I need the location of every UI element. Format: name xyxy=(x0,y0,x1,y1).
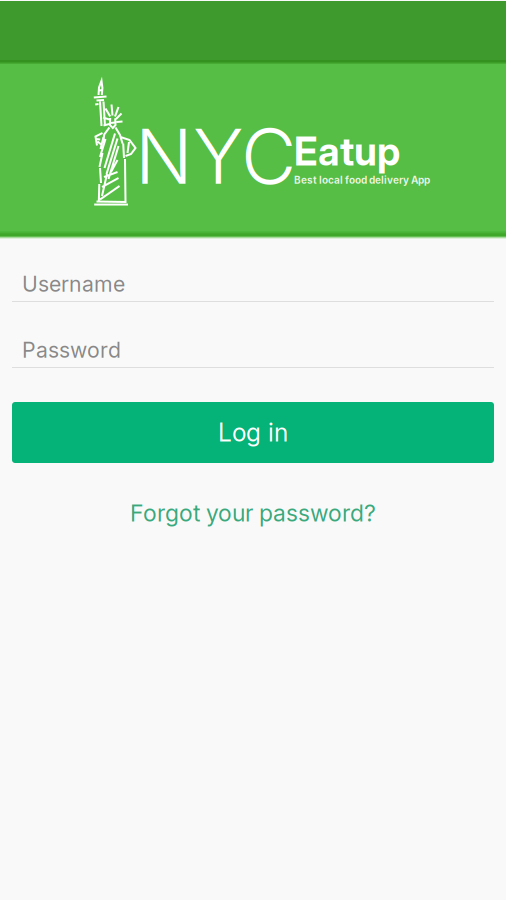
button[interactable]: Username xyxy=(12,252,506,306)
staticText: Password xyxy=(22,337,121,363)
staticText: Eatup xyxy=(294,128,400,175)
staticText: Username xyxy=(22,271,125,297)
staticText: Best local food delivery App xyxy=(294,174,430,186)
staticText: NYC xyxy=(135,110,296,202)
staticText: Log in xyxy=(218,418,288,447)
button[interactable]: Forgot your password? xyxy=(12,495,494,531)
button[interactable]: Password xyxy=(12,318,506,372)
button[interactable]: Log in xyxy=(12,402,494,463)
staticText: Forgot your password? xyxy=(130,499,376,527)
